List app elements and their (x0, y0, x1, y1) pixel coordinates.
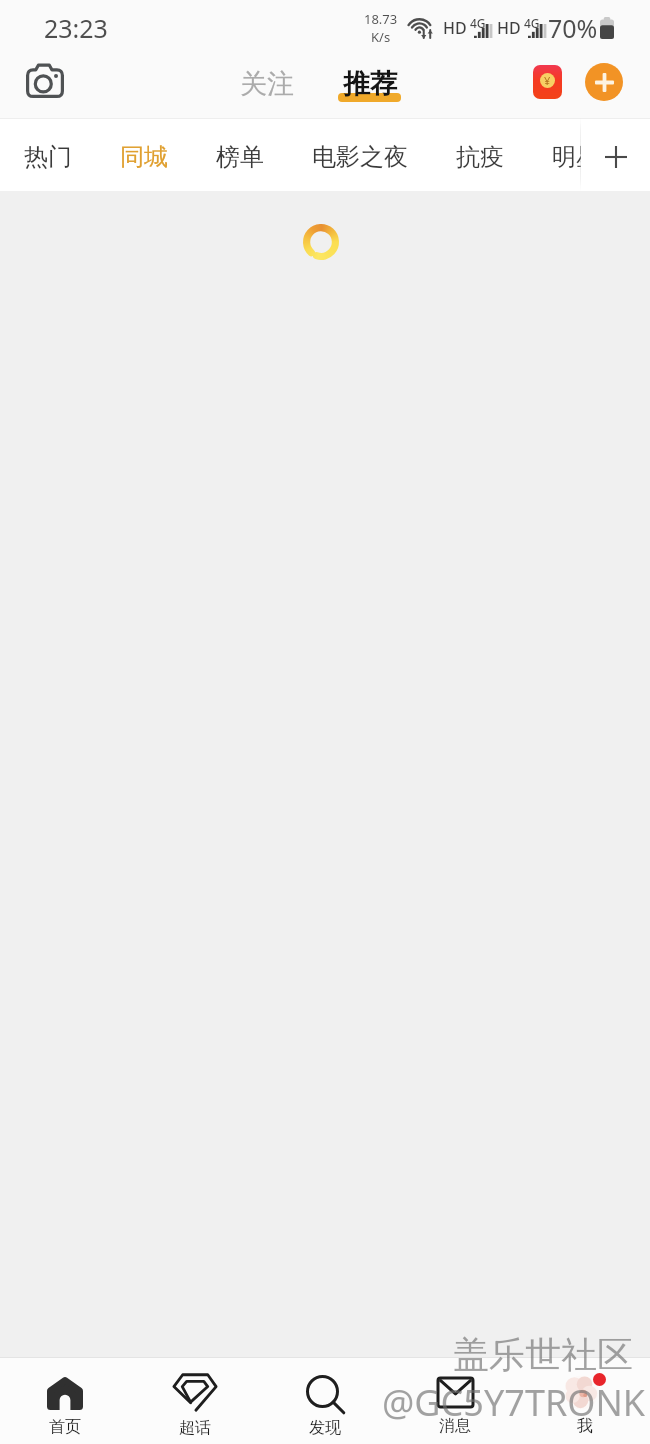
staticText: 抗疫 (456, 142, 504, 172)
staticText: ¥ (544, 73, 551, 88)
staticText: K/s (371, 28, 391, 46)
staticText: 消息 (439, 1416, 471, 1436)
button[interactable]: 抗疫 (432, 134, 528, 180)
staticText: 热门 (24, 142, 72, 172)
button[interactable]: 电影之夜 (288, 134, 432, 180)
button[interactable]: 发现 (260, 1358, 390, 1444)
button[interactable]: 超话 (130, 1358, 260, 1444)
staticText: 榜单 (216, 142, 264, 172)
staticText: 盖乐世社区 (453, 1332, 633, 1377)
staticText: HD (443, 17, 467, 39)
staticText: 首页 (49, 1417, 81, 1437)
button[interactable]: Compose post (585, 63, 623, 101)
button[interactable]: 同城 (96, 134, 192, 180)
staticText: 18.73 (364, 10, 398, 28)
button[interactable]: 关注 (230, 61, 304, 107)
staticText: @GC5Y7TRONK (382, 1378, 646, 1427)
staticText: 超话 (179, 1418, 211, 1438)
staticText: 70% (548, 11, 598, 45)
staticText: 我 (577, 1416, 593, 1436)
staticText: 4G (470, 15, 486, 31)
button[interactable]: 榜单 (192, 134, 288, 180)
button[interactable]: 明星 (528, 134, 581, 180)
staticText: 关注 (240, 67, 294, 101)
button[interactable]: 首页 (0, 1358, 130, 1444)
staticText: 明星 (552, 142, 581, 172)
staticText: 电影之夜 (312, 142, 408, 172)
button[interactable]: 消息 (390, 1358, 520, 1444)
staticText: 推荐 (343, 67, 397, 101)
staticText: 4G (524, 15, 540, 31)
staticText: 23:23 (44, 11, 108, 45)
button[interactable]: 推荐 (328, 61, 411, 107)
button[interactable]: 热门 (0, 134, 96, 180)
button[interactable]: Camera (17, 55, 73, 107)
button[interactable]: 我 (520, 1358, 650, 1444)
button[interactable]: Add channel (594, 135, 638, 179)
staticText: 发现 (309, 1418, 341, 1438)
staticText: 同城 (120, 142, 168, 172)
button[interactable]: Red packet (533, 65, 562, 99)
staticText: HD (497, 17, 521, 39)
